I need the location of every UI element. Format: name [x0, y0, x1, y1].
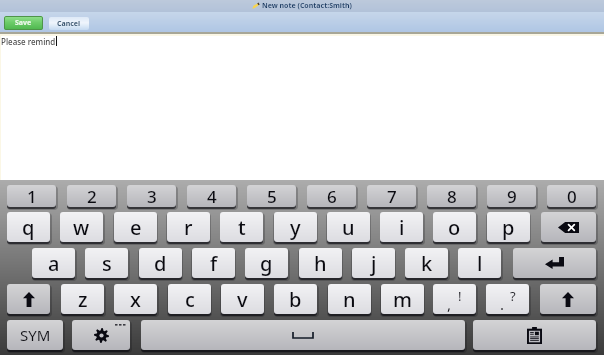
button[interactable]: m	[381, 284, 424, 314]
button[interactable]: j	[352, 248, 395, 278]
button[interactable]: q	[7, 212, 50, 242]
staticText: p	[502, 214, 515, 241]
staticText: x	[130, 286, 141, 313]
staticText: Cancel	[57, 19, 81, 29]
staticText: m	[393, 286, 412, 313]
staticText: u	[342, 214, 355, 241]
button[interactable]: r	[167, 212, 210, 242]
button[interactable]: s	[85, 248, 128, 278]
staticText: New note (Contact:Smith)	[262, 1, 352, 11]
staticText: n	[343, 286, 356, 313]
staticText: t	[238, 214, 246, 241]
staticText: v	[237, 286, 248, 313]
staticText: s	[102, 250, 112, 277]
button[interactable]: f	[192, 248, 235, 278]
staticText: b	[289, 286, 302, 313]
button[interactable]: Space	[141, 320, 465, 350]
button[interactable]: Shift	[540, 284, 596, 314]
staticText: 3	[147, 185, 157, 207]
button[interactable]: p	[487, 212, 530, 242]
button[interactable]: v	[221, 284, 264, 314]
staticText: e	[130, 214, 142, 241]
button[interactable]: Backspace	[541, 212, 596, 242]
button[interactable]: x	[114, 284, 157, 314]
button[interactable]: 5	[247, 185, 296, 207]
staticText: d	[154, 250, 167, 277]
staticText: z	[78, 286, 88, 313]
button[interactable]: 2	[67, 185, 116, 207]
staticText: SYM	[20, 325, 51, 345]
staticText: k	[421, 250, 433, 277]
button[interactable]: d	[139, 248, 182, 278]
staticText: o	[448, 214, 461, 241]
button[interactable]: h	[299, 248, 342, 278]
button[interactable]: Cancel	[49, 17, 89, 30]
staticText: h	[314, 250, 327, 277]
staticText: .	[500, 294, 505, 314]
staticText: 8	[447, 185, 457, 207]
button[interactable]: l	[458, 248, 501, 278]
button[interactable]: z	[61, 284, 104, 314]
button[interactable]: t	[220, 212, 263, 242]
button[interactable]: Clipboard	[473, 320, 596, 350]
staticText: 9	[507, 185, 517, 207]
button[interactable]: 6	[307, 185, 356, 207]
staticText: 4	[207, 185, 217, 207]
staticText: ?	[510, 287, 516, 305]
staticText: Please remind	[1, 36, 56, 47]
button[interactable]: 3	[127, 185, 176, 207]
button[interactable]: Input method settings	[72, 320, 130, 350]
staticText: a	[48, 250, 60, 277]
button[interactable]: i	[380, 212, 423, 242]
staticText: 2	[87, 185, 97, 207]
staticText: j	[371, 250, 377, 277]
button[interactable]: e	[114, 212, 157, 242]
staticText: g	[260, 250, 273, 277]
button[interactable]: Shift	[7, 284, 50, 314]
staticText: 6	[327, 185, 337, 207]
button[interactable]: 9	[487, 185, 536, 207]
staticText: 1	[27, 185, 37, 207]
button[interactable]: 0	[547, 185, 596, 207]
staticText: 5	[267, 185, 277, 207]
button[interactable]: 7	[367, 185, 416, 207]
button[interactable]: u	[327, 212, 370, 242]
staticText: q	[22, 214, 35, 241]
staticText: l	[477, 250, 483, 277]
staticText: !	[458, 287, 462, 305]
button[interactable]: b	[274, 284, 317, 314]
staticText: 0	[567, 185, 577, 207]
button[interactable]: y	[274, 212, 317, 242]
button[interactable]: 8	[427, 185, 476, 207]
button[interactable]: o	[433, 212, 476, 242]
button[interactable]: !	[433, 284, 476, 314]
staticText: f	[210, 250, 218, 277]
staticText: c	[185, 286, 195, 313]
button[interactable]: 1	[7, 185, 56, 207]
staticText: w	[73, 214, 90, 241]
button[interactable]: Please remind	[1, 36, 604, 184]
button[interactable]: k	[405, 248, 448, 278]
staticText: y	[290, 214, 301, 241]
staticText: i	[399, 214, 405, 241]
staticText: r	[184, 214, 193, 241]
button[interactable]: n	[328, 284, 371, 314]
staticText: Save	[15, 18, 32, 28]
button[interactable]: 4	[187, 185, 236, 207]
button[interactable]: ?	[486, 284, 529, 314]
button[interactable]: c	[168, 284, 211, 314]
staticText: ,	[447, 294, 452, 314]
button[interactable]: w	[60, 212, 103, 242]
button[interactable]: a	[32, 248, 75, 278]
button[interactable]: g	[245, 248, 288, 278]
button[interactable]: Enter	[513, 248, 596, 278]
button[interactable]: Save	[4, 16, 43, 30]
staticText: 7	[387, 185, 397, 207]
button[interactable]: SYM	[7, 320, 63, 350]
